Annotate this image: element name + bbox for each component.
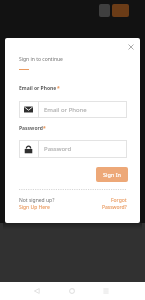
staticText: Sign In (103, 171, 121, 178)
staticText: Password? (102, 204, 127, 211)
button[interactable]: Forgot (19, 197, 127, 211)
staticText: Not signed up? (19, 197, 55, 204)
button[interactable]: Recents (94, 282, 118, 300)
staticText: Sign Up Here (19, 204, 50, 211)
staticText: Email or Phone (19, 85, 57, 92)
button[interactable]: Password (19, 140, 127, 158)
button[interactable]: Home (60, 282, 84, 300)
button[interactable]: Close (123, 39, 139, 55)
staticText: * (57, 85, 60, 92)
button[interactable]: Not signed up? (19, 197, 55, 211)
staticText: Password (44, 145, 72, 153)
staticText: Password (19, 125, 43, 132)
button[interactable]: Email or Phone (19, 101, 127, 118)
staticText: Email or Phone (44, 106, 87, 114)
staticText: Sign in to continue (19, 56, 63, 63)
button[interactable]: Sign In (96, 167, 128, 182)
staticText: * (43, 125, 46, 132)
staticText: Forgot (111, 197, 127, 204)
button[interactable]: Back (25, 282, 49, 300)
